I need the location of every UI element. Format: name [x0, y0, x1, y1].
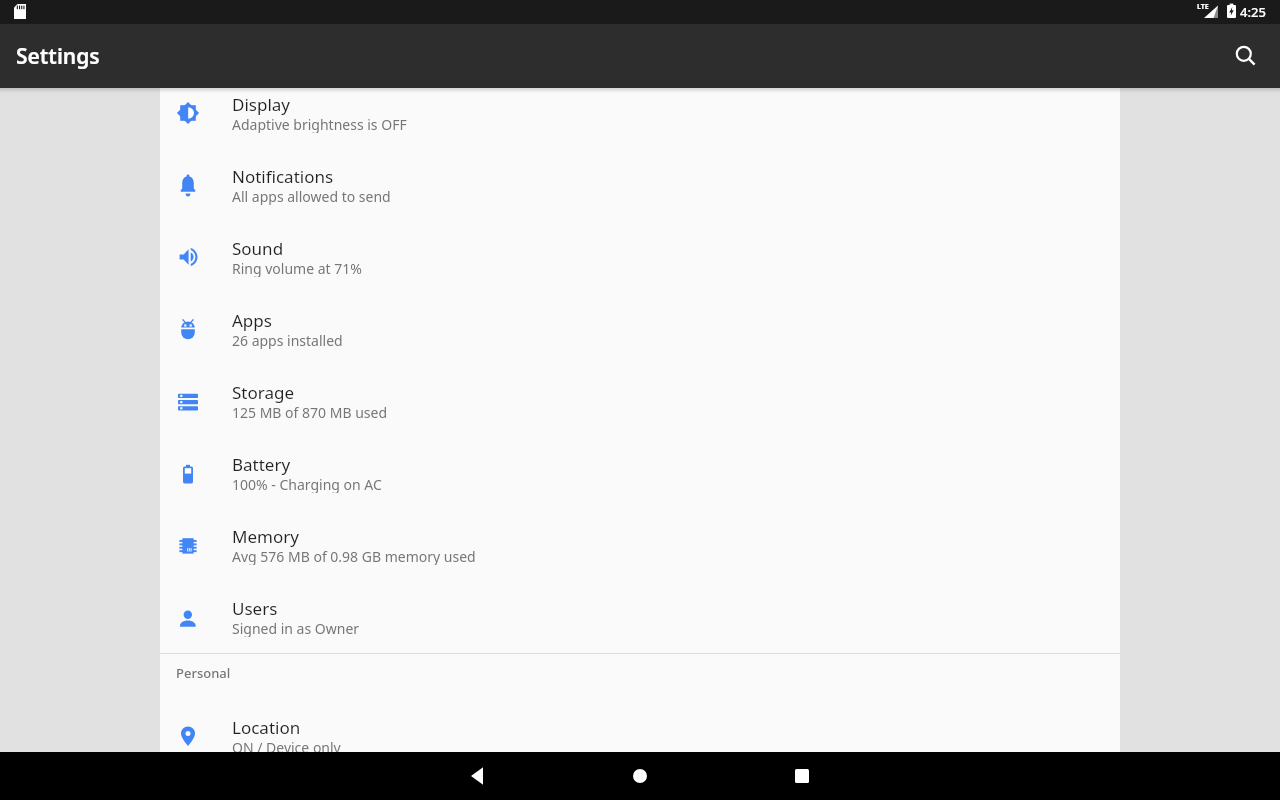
button[interactable]: Display [160, 88, 1120, 157]
button[interactable] [616, 752, 664, 800]
staticText: Avg 576 MB of 0.98 GB memory used [232, 547, 476, 565]
staticText: Battery [232, 453, 291, 475]
staticText: Personal [176, 664, 231, 682]
staticText: Signed in as Owner [232, 619, 360, 637]
staticText: 4:25 [1240, 3, 1266, 21]
button[interactable] [1222, 32, 1270, 80]
staticText: Ring volume at 71% [232, 259, 362, 277]
button[interactable]: Users [160, 589, 1120, 661]
staticText: Adaptive brightness is OFF [232, 115, 407, 133]
staticText: Display [232, 93, 290, 115]
button[interactable]: Sound [160, 229, 1120, 301]
staticText: Users [232, 597, 278, 619]
staticText: ON / Device only [232, 738, 341, 752]
button[interactable] [778, 752, 826, 800]
button[interactable]: Memory [160, 517, 1120, 589]
staticText: Storage [232, 381, 295, 403]
button[interactable]: Location [160, 708, 1120, 752]
staticText: 125 MB of 870 MB used [232, 403, 387, 421]
staticText: All apps allowed to send [232, 187, 391, 205]
button[interactable]: Notifications [160, 157, 1120, 229]
staticText: 26 apps installed [232, 331, 343, 349]
staticText: LTE [1197, 2, 1209, 12]
button[interactable]: Battery [160, 445, 1120, 517]
staticText: Location [232, 716, 301, 738]
staticText: Notifications [232, 165, 334, 187]
button[interactable]: Apps [160, 301, 1120, 373]
staticText: Apps [232, 309, 272, 331]
staticText: Sound [232, 237, 284, 259]
staticText: 100% - Charging on AC [232, 475, 382, 493]
staticText: Memory [232, 525, 299, 547]
button[interactable]: Storage [160, 373, 1120, 445]
staticText: Settings [16, 42, 100, 71]
button[interactable] [454, 752, 502, 800]
